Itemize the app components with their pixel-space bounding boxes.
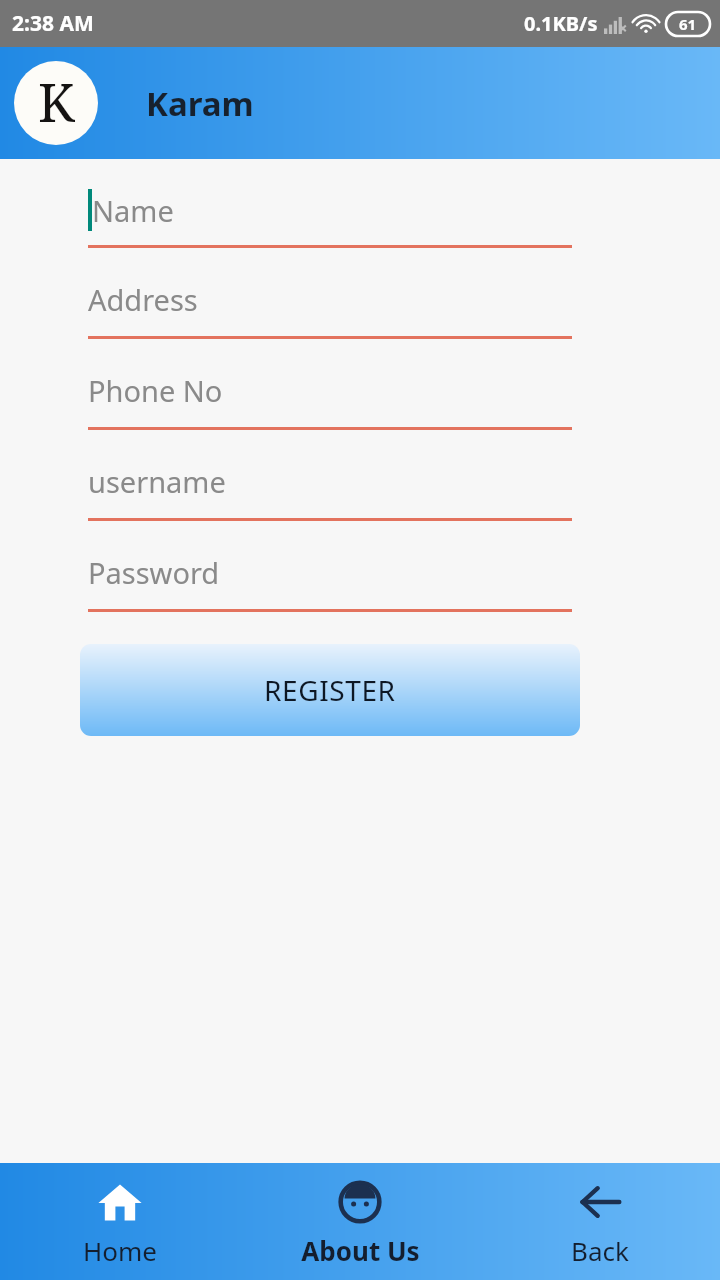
staticText: 0.1KB/s — [524, 10, 598, 37]
staticText: username — [88, 462, 226, 501]
button[interactable]: Name — [0, 181, 720, 272]
staticText: Karam — [146, 81, 254, 126]
staticText: About Us — [301, 1233, 420, 1268]
staticText: 61 — [679, 14, 697, 34]
button[interactable]: Address — [0, 272, 720, 363]
button[interactable]: username — [0, 454, 720, 545]
button[interactable]: Back — [480, 1163, 720, 1280]
staticText: Phone No — [88, 371, 223, 410]
staticText: Address — [88, 280, 198, 319]
staticText: K — [38, 66, 75, 137]
button[interactable]: Phone No — [0, 363, 720, 454]
staticText: Home — [83, 1233, 157, 1268]
staticText: Name — [92, 191, 174, 230]
staticText: Back — [571, 1233, 629, 1268]
button[interactable]: Home — [0, 1163, 240, 1280]
button[interactable]: REGISTER — [80, 644, 580, 736]
staticText: 2:38 AM — [12, 9, 94, 38]
staticText: REGISTER — [264, 671, 396, 709]
button[interactable]: Password — [0, 545, 720, 636]
button[interactable]: About Us — [240, 1163, 480, 1280]
staticText: Password — [88, 553, 220, 592]
